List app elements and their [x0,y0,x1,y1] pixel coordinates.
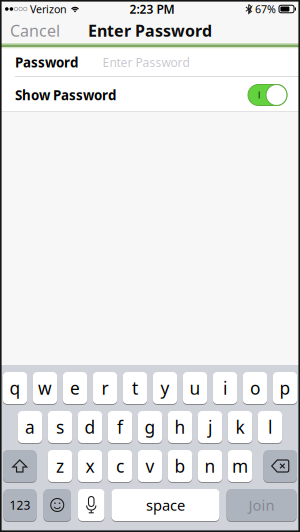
button[interactable]: h [168,411,192,443]
button[interactable]: y [153,372,177,404]
staticText: Enter Password [102,54,189,70]
staticText: a [25,415,35,438]
staticText: o [250,376,260,399]
staticText: g [144,415,155,438]
staticText: l [268,415,272,438]
staticText: w [38,376,52,399]
button[interactable]: a [18,411,42,443]
staticText: 2:23 PM [129,1,174,17]
button[interactable]: r [93,372,117,404]
button[interactable]: p [273,372,297,404]
staticText: Verizon [30,2,67,16]
staticText: b [174,454,185,477]
button[interactable]: k [228,411,252,443]
button[interactable]: d [78,411,102,443]
button[interactable]: g [138,411,162,443]
button[interactable]: v [138,450,162,482]
button[interactable]: Join [226,489,296,521]
button[interactable]: f [108,411,132,443]
button[interactable]: c [108,450,132,482]
staticText: 67% [255,2,276,16]
staticText: Cancel [10,20,60,41]
button[interactable]: l [258,411,282,443]
button[interactable]: Shift [3,450,36,482]
button[interactable]: s [48,411,72,443]
button[interactable]: t [123,372,147,404]
button[interactable]: x [78,450,102,482]
button[interactable]: e [63,372,87,404]
staticText: s [56,415,64,438]
staticText: p [279,376,290,399]
button[interactable]: Show Password [0,77,300,111]
button[interactable]: q [3,372,27,404]
staticText: 123 [9,497,30,513]
button[interactable]: space [111,489,219,521]
staticText: Enter Password [88,20,212,41]
staticText: m [232,454,248,477]
staticText: x [85,454,94,477]
button[interactable]: u [183,372,207,404]
staticText: Password [15,53,78,71]
staticText: j [208,415,212,438]
staticText: q [9,376,20,399]
button[interactable]: 123 [3,489,36,521]
staticText: Join [248,495,274,515]
staticText: t [132,376,138,399]
button[interactable]: j [198,411,222,443]
staticText: z [56,454,64,477]
staticText: u [189,376,200,399]
button[interactable]: w [33,372,57,404]
button[interactable]: o [243,372,267,404]
staticText: n [204,454,215,477]
button[interactable]: Password [0,48,300,76]
staticText: Show Password [15,86,116,104]
staticText: h [174,415,185,438]
button[interactable]: b [168,450,192,482]
staticText: e [70,376,80,399]
button[interactable]: m [228,450,252,482]
staticText: y [160,376,169,399]
staticText: f [117,415,123,438]
staticText: k [235,415,244,438]
staticText: c [116,454,124,477]
staticText: v [145,454,154,477]
button[interactable]: z [48,450,72,482]
button[interactable]: Emoji [43,489,71,521]
button[interactable]: Cancel [0,20,60,41]
staticText: space [146,495,185,515]
staticText: r [101,376,108,399]
staticText: d [84,415,95,438]
button[interactable]: Dictate [78,489,104,521]
staticText: i [223,376,227,399]
button[interactable]: Delete [263,450,297,482]
button[interactable]: i [213,372,237,404]
button[interactable]: n [198,450,222,482]
